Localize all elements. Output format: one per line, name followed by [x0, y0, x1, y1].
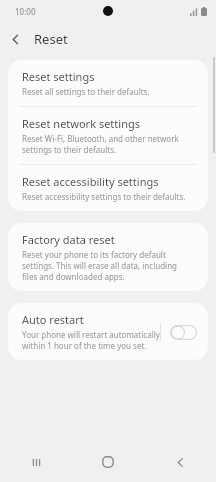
staticText: Reset network settings — [22, 116, 140, 131]
button[interactable]: Recents — [0, 442, 72, 482]
button[interactable]: Auto restart toggle — [168, 321, 198, 343]
button[interactable]: Home — [72, 442, 144, 482]
button[interactable]: Reset settings — [8, 60, 208, 106]
staticText: Reset — [34, 30, 68, 48]
staticText: Factory data reset — [22, 232, 115, 247]
staticText: Reset Wi-Fi, Bluetooth, and other networ… — [22, 133, 194, 155]
button[interactable]: Reset network settings — [8, 107, 208, 164]
staticText: Reset your phone to its factory default … — [22, 249, 194, 282]
button[interactable]: Reset accessibility settings — [8, 165, 208, 211]
staticText: Reset accessibility settings — [22, 174, 159, 189]
button[interactable]: Factory data reset — [8, 223, 208, 291]
staticText: Reset all settings to their defaults. — [22, 86, 150, 97]
staticText: 10:00 — [15, 6, 36, 17]
staticText: Reset accessibility settings to their de… — [22, 191, 186, 202]
staticText: Reset settings — [22, 69, 95, 84]
button[interactable]: Back — [144, 442, 216, 482]
button[interactable]: Navigate up — [0, 24, 30, 54]
button[interactable]: Auto restart — [8, 303, 208, 360]
staticText: Your phone will restart automatically wi… — [22, 329, 160, 351]
staticText: Auto restart — [22, 312, 84, 327]
